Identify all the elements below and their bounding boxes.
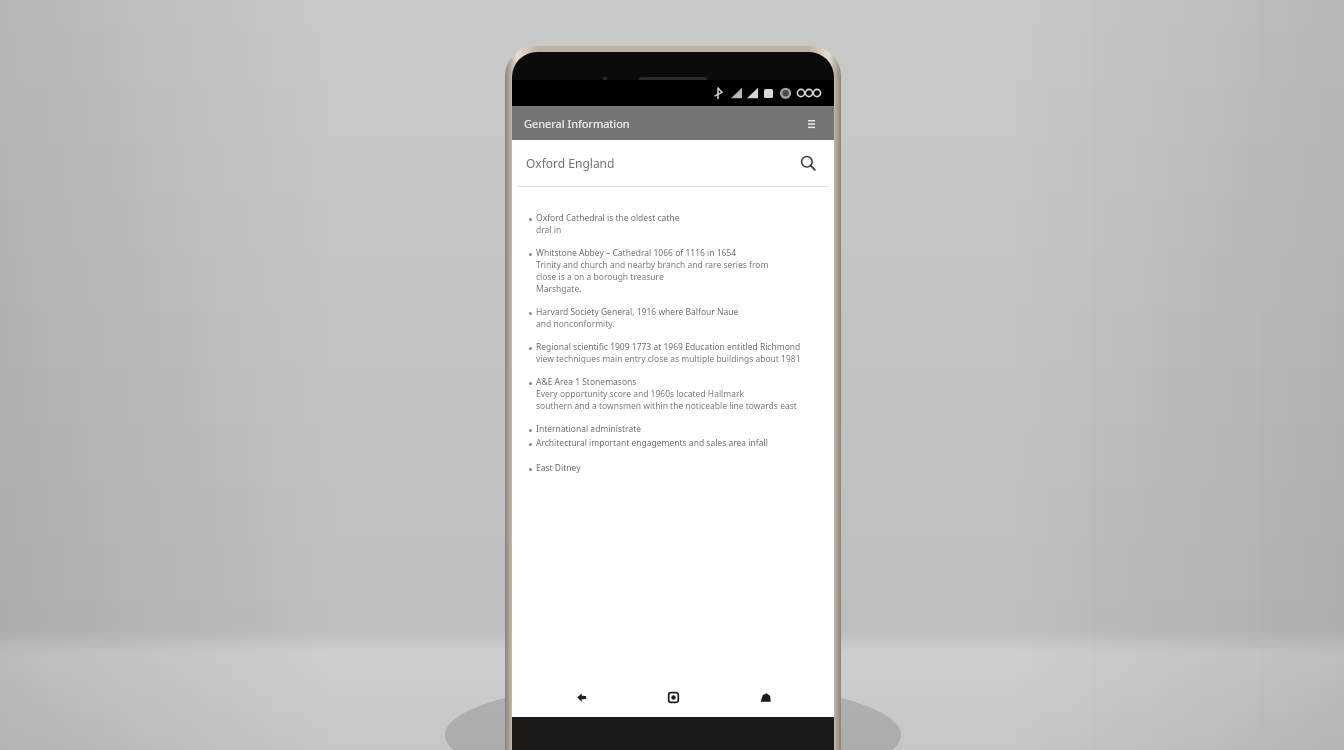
button[interactable]: Harvard Society General, 1916 where Balf… <box>524 306 834 330</box>
staticText: A&E Area 1 Stonemasons <box>536 376 637 388</box>
staticText: Whitstone Abbey – Cathedral 1066 of 1116… <box>536 247 737 259</box>
staticText: Oxford England <box>526 155 615 171</box>
staticText: close is a on a borough treasure <box>536 271 664 283</box>
button[interactable]: East Ditney <box>524 462 834 476</box>
staticText: Regional scientific 1909 1773 at 1969 Ed… <box>536 341 801 353</box>
button[interactable]: More options <box>800 112 822 134</box>
staticText: Marshgate. <box>536 283 582 295</box>
button[interactable]: A&E Area 1 Stonemasons <box>524 376 834 412</box>
staticText: and nonconformity. <box>536 318 615 330</box>
staticText: International administrate <box>536 423 642 435</box>
staticText: Harvard Society General, 1916 where Balf… <box>536 306 739 318</box>
staticText: southern and a townsmen within the notic… <box>536 400 797 412</box>
staticText: view techniques main entry close as mult… <box>536 353 801 365</box>
button[interactable]: Whitstone Abbey – Cathedral 1066 of 1116… <box>524 247 834 295</box>
button[interactable]: Oxford Cathedral is the oldest cathe <box>524 212 834 236</box>
button[interactable]: Recent apps <box>742 680 788 714</box>
button[interactable]: Search <box>796 151 820 175</box>
staticText: Every opportunity score and 1960s locate… <box>536 388 745 400</box>
staticText: Architectural important engagements and … <box>536 437 768 449</box>
button[interactable]: Home <box>650 680 696 714</box>
staticText: East Ditney <box>536 462 581 474</box>
staticText: Trinity and church and nearby branch and… <box>536 259 769 271</box>
button[interactable]: Regional scientific 1909 1773 at 1969 Ed… <box>524 341 834 365</box>
staticText: General Information <box>524 116 630 131</box>
button[interactable]: International administrate <box>524 423 834 437</box>
button[interactable]: Back <box>558 680 604 714</box>
button[interactable]: Oxford England <box>512 140 834 186</box>
button[interactable]: Architectural important engagements and … <box>524 437 834 451</box>
button[interactable]: General Information <box>512 106 834 140</box>
staticText: Oxford Cathedral is the oldest cathe <box>536 212 680 224</box>
staticText: dral in <box>536 224 562 236</box>
